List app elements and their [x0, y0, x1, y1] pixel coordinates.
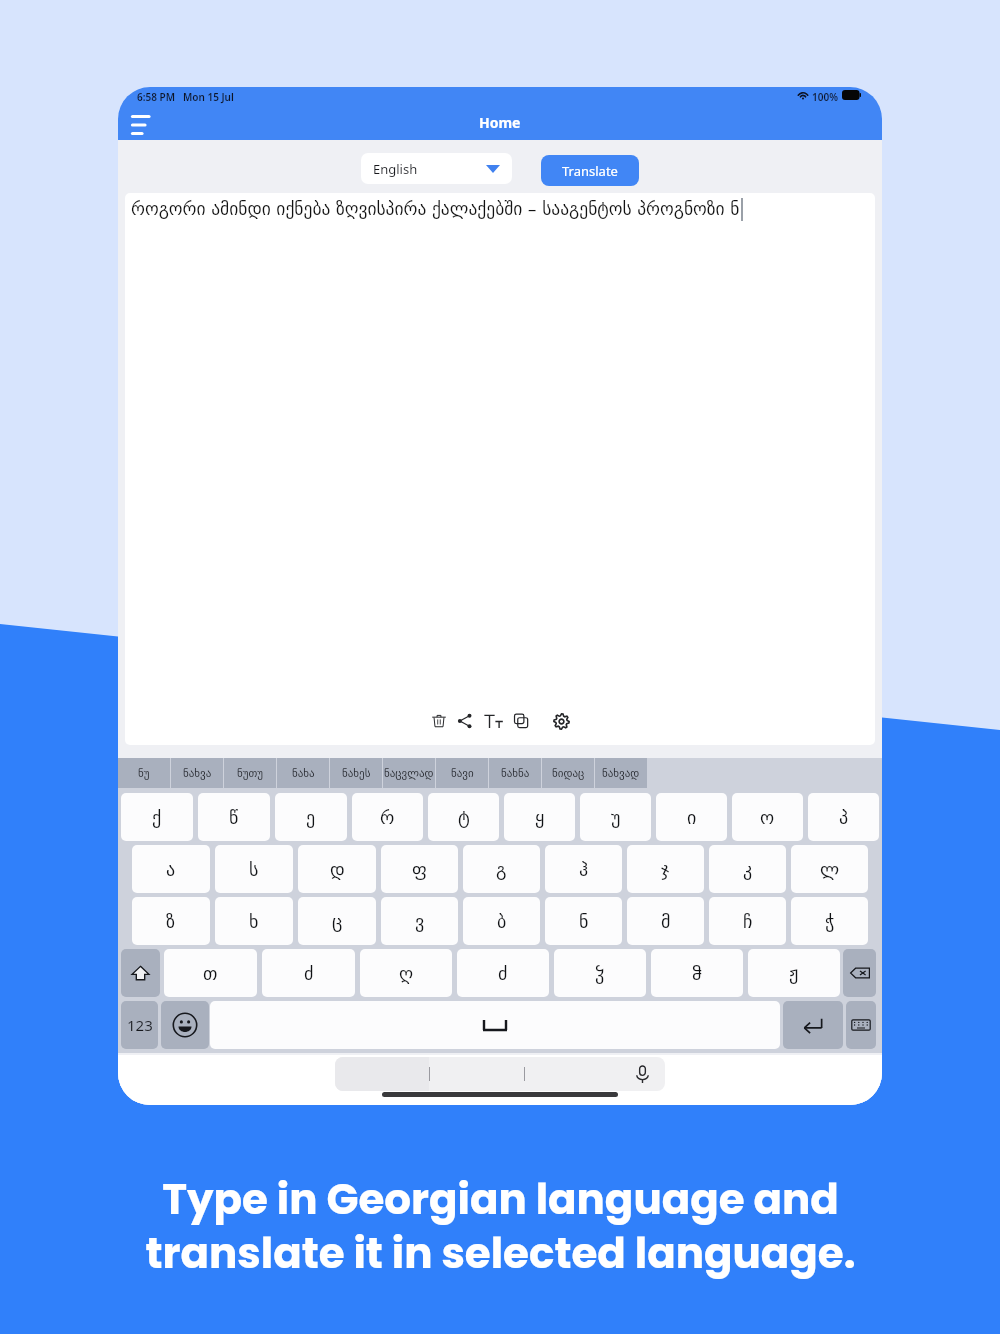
button[interactable]: მ [627, 897, 704, 945]
button[interactable]: Settings [550, 710, 572, 732]
button[interactable]: კ [709, 845, 786, 893]
button[interactable]: უ [580, 793, 651, 841]
button[interactable]: Translate [541, 155, 639, 186]
staticText: ც [332, 911, 343, 932]
button[interactable]: ნახვა [171, 758, 223, 788]
staticText: როგორი ამინდი იქნება ზღვისპირა ქალაქებში… [131, 199, 740, 219]
button[interactable]: Emoji [161, 1001, 209, 1049]
button[interactable]: ნ [545, 897, 622, 945]
staticText: 123 [127, 1015, 153, 1035]
button[interactable]: ლ [791, 845, 868, 893]
button[interactable]: Text size [482, 710, 504, 732]
staticText: ა [166, 859, 176, 880]
button[interactable]: პ [808, 793, 879, 841]
button[interactable]: ბ [463, 897, 540, 945]
staticText: ე [306, 807, 316, 828]
staticText: ს [249, 859, 259, 880]
staticText: ნახნა [501, 767, 530, 780]
button[interactable]: Backspace [843, 949, 876, 997]
staticText: ნახვა [183, 767, 212, 780]
button[interactable]: ძ [457, 949, 549, 997]
button[interactable]: ქ [121, 793, 193, 841]
staticText: Home [479, 113, 521, 132]
staticText: გ [496, 859, 507, 880]
button[interactable]: ტ [428, 793, 499, 841]
button[interactable]: ჭ [791, 897, 868, 945]
button[interactable]: ძ [262, 949, 355, 997]
staticText: თ [203, 963, 218, 984]
staticText: ნიდაც [552, 767, 585, 780]
button[interactable]: ც [298, 897, 376, 945]
button[interactable]: ნიდაც [542, 758, 594, 788]
button[interactable]: Menu [130, 113, 156, 137]
staticText: მ [661, 911, 671, 932]
staticText: ჟ [789, 963, 799, 984]
staticText: წ [229, 807, 239, 828]
button[interactable]: ღ [360, 949, 452, 997]
staticText: ძ [304, 963, 314, 984]
staticText: 100% [812, 90, 838, 104]
button[interactable]: ს [215, 845, 293, 893]
button[interactable]: Hide keyboard [846, 1001, 876, 1049]
button[interactable]: ნახნა [489, 758, 541, 788]
button[interactable]: რ [352, 793, 423, 841]
button[interactable]: ყ [504, 793, 575, 841]
button[interactable]: ფ [381, 845, 458, 893]
staticText: ღ [399, 963, 414, 984]
button[interactable]: ნაცვლად [383, 758, 435, 788]
button[interactable]: ჟ [748, 949, 840, 997]
button[interactable]: English [361, 153, 512, 184]
staticText: ნუთუ [237, 767, 264, 780]
staticText: ნახა [292, 767, 315, 780]
button[interactable]: თ [164, 949, 257, 997]
button[interactable]: ნავი [436, 758, 488, 788]
button[interactable]: წ [198, 793, 270, 841]
button[interactable]: ა [132, 845, 210, 893]
staticText: პ [839, 807, 849, 828]
staticText: English [373, 160, 418, 178]
button[interactable]: ჴ [554, 949, 646, 997]
staticText: ხ [249, 911, 259, 932]
staticText: ქ [152, 807, 162, 828]
button[interactable]: ჵ [651, 949, 743, 997]
staticText: ვ [415, 911, 425, 932]
staticText: ნ [579, 911, 589, 932]
button[interactable]: ჩ [709, 897, 786, 945]
button[interactable]: ნუ [118, 758, 170, 788]
button[interactable]: ხ [215, 897, 293, 945]
staticText: უ [611, 807, 621, 828]
button[interactable]: დ [298, 845, 376, 893]
button[interactable]: Space [210, 1001, 780, 1049]
staticText: ნახვად [602, 767, 640, 780]
staticText: ძ [498, 963, 508, 984]
staticText: ზ [166, 911, 176, 932]
button[interactable]: ჯ [627, 845, 704, 893]
button[interactable]: ნახვად [595, 758, 647, 788]
staticText: ბ [497, 911, 507, 932]
button[interactable]: Enter [783, 1001, 843, 1049]
button[interactable]: Voice input [619, 1057, 665, 1091]
button[interactable]: Share [454, 710, 476, 732]
staticText: ნუ [138, 767, 150, 780]
button[interactable]: Delete [428, 710, 450, 732]
button[interactable]: ნახეს [330, 758, 382, 788]
staticText: Type in Georgian language and translate … [145, 1170, 856, 1282]
staticText: ნახეს [342, 767, 371, 780]
button[interactable]: ვ [381, 897, 458, 945]
button[interactable]: გ [463, 845, 540, 893]
button[interactable]: ნახა [277, 758, 329, 788]
button[interactable]: ო [732, 793, 803, 841]
button[interactable]: ი [656, 793, 727, 841]
button[interactable]: 123 [121, 1001, 158, 1049]
button[interactable]: ნუთუ [224, 758, 276, 788]
staticText: ჩ [743, 911, 753, 932]
staticText: 6:58 PM [137, 90, 175, 104]
button[interactable]: ე [275, 793, 347, 841]
button[interactable]: Shift [121, 949, 160, 997]
button[interactable]: ზ [132, 897, 210, 945]
staticText: ტ [458, 807, 470, 828]
staticText: ყ [535, 807, 545, 828]
staticText: ჯ [661, 859, 670, 880]
button[interactable]: Copy [510, 710, 532, 732]
button[interactable]: ჰ [545, 845, 622, 893]
